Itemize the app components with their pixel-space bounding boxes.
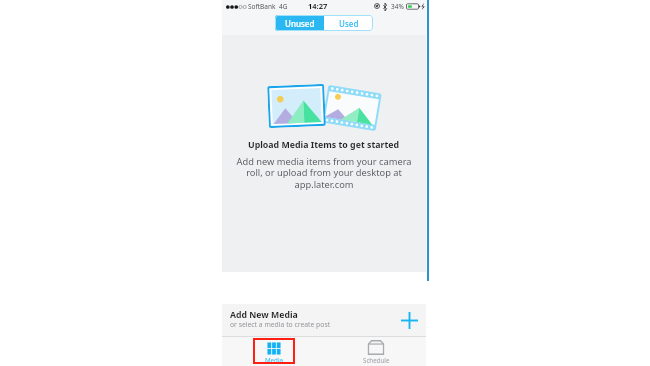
staticText: Unused [285, 18, 315, 29]
staticText: Add New Media [230, 309, 298, 321]
button[interactable]: Add New Media [222, 304, 426, 337]
button[interactable]: Media [253, 338, 295, 366]
button[interactable]: Schedule [355, 338, 397, 366]
staticText: SoftBank [248, 2, 276, 11]
staticText: Upload Media Items to get started [248, 139, 400, 151]
staticText: Media [265, 356, 283, 364]
button[interactable]: Add new media [398, 309, 421, 332]
staticText: Used [339, 18, 359, 29]
staticText: 4G [279, 2, 288, 11]
button[interactable]: Unused [275, 15, 324, 31]
button[interactable]: Used [324, 15, 373, 31]
staticText: Add new media items from your camera rol… [236, 155, 412, 191]
staticText: or select a media to create post [230, 320, 331, 329]
staticText: 34% [391, 2, 404, 11]
staticText: Schedule [363, 356, 390, 364]
staticText: 14:27 [308, 1, 328, 11]
